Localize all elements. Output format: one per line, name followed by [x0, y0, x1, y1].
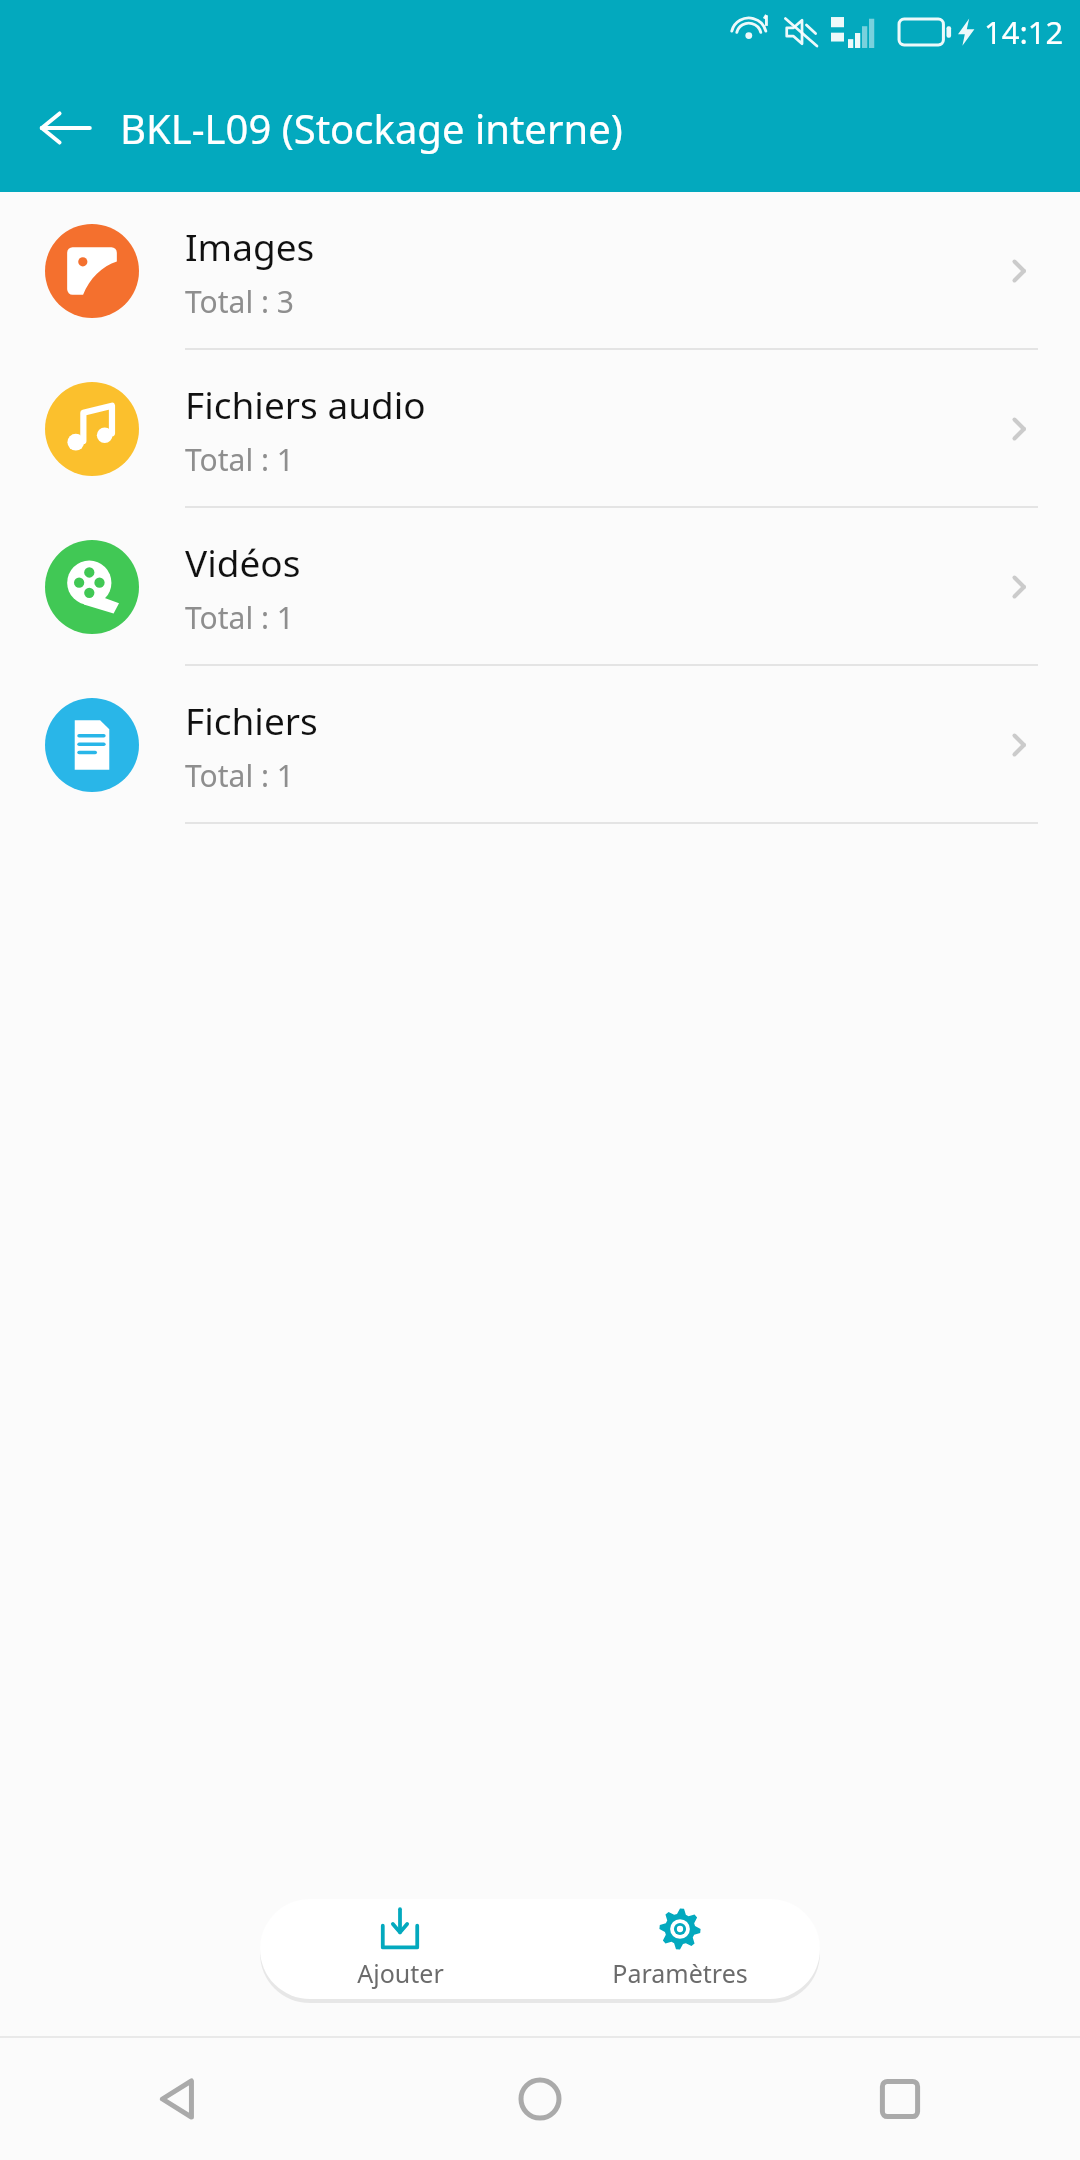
staticText: Total : 1: [185, 439, 294, 480]
button[interactable]: Fichiers audio: [0, 350, 1080, 508]
staticText: Vidéos: [185, 537, 301, 587]
staticText: Fichiers audio: [185, 379, 426, 429]
staticText: Fichiers: [185, 695, 318, 745]
staticText: Paramètres: [612, 1956, 748, 1990]
staticText: Images: [185, 221, 315, 271]
button[interactable]: Back: [22, 85, 108, 171]
button[interactable]: Ajouter: [260, 1899, 540, 1999]
staticText: 14:12: [984, 11, 1064, 53]
button[interactable]: Vidéos: [0, 508, 1080, 666]
button[interactable]: Paramètres: [540, 1899, 820, 1999]
staticText: Total : 1: [185, 597, 294, 638]
button[interactable]: Home: [360, 2038, 720, 2160]
button[interactable]: Back: [0, 2038, 360, 2160]
staticText: Ajouter: [357, 1956, 444, 1990]
staticText: Total : 3: [185, 281, 294, 322]
button[interactable]: Images: [0, 192, 1080, 350]
staticText: BKL-L09 (Stockage interne): [120, 101, 623, 155]
button[interactable]: Fichiers: [0, 666, 1080, 824]
button[interactable]: Recents: [720, 2038, 1080, 2160]
staticText: Total : 1: [185, 755, 294, 796]
